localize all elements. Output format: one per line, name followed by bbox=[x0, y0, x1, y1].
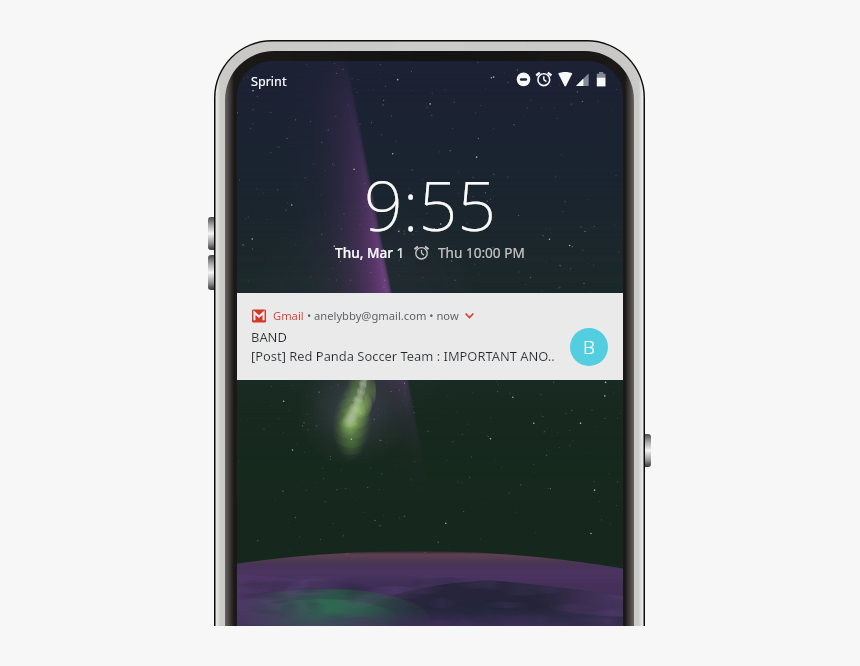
staticText: BAND bbox=[251, 328, 287, 346]
staticText: Thu, Mar bbox=[335, 243, 393, 262]
staticText: 1 bbox=[393, 243, 405, 262]
button[interactable]: Gmail bbox=[237, 293, 623, 380]
staticText: Sprint bbox=[251, 73, 287, 90]
staticText: Gmail bbox=[273, 308, 304, 323]
staticText: B bbox=[583, 334, 595, 360]
staticText: 9:55 bbox=[364, 158, 496, 251]
staticText: • anelybby@gmail.com • now bbox=[304, 308, 465, 323]
staticText: Thu 10:00 PM bbox=[438, 243, 525, 262]
staticText: [Post] Red Panda Soccer Team : IMPORTANT… bbox=[251, 347, 555, 365]
